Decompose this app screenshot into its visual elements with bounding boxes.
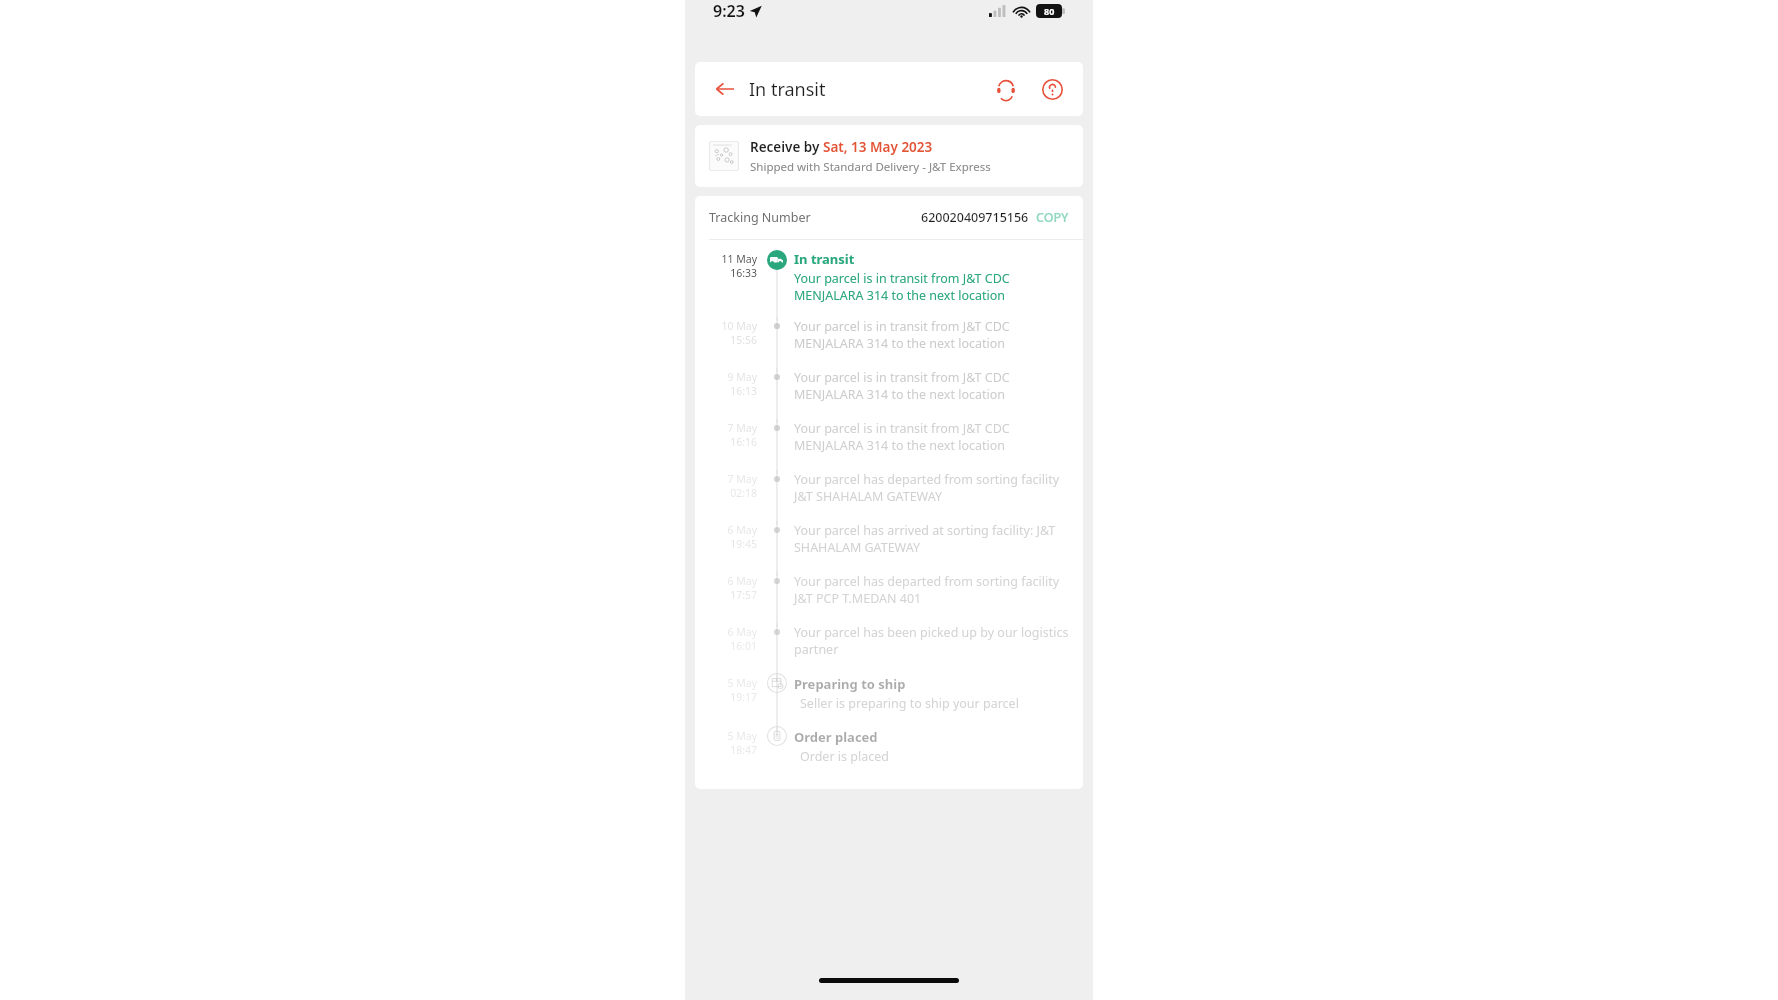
staticText: 7 May xyxy=(727,421,757,435)
staticText: Seller is preparing to ship your parcel xyxy=(800,695,1019,712)
staticText: In transit xyxy=(749,77,826,102)
staticText: Your parcel has departed from sorting fa… xyxy=(794,471,1071,505)
staticText: Order placed xyxy=(794,728,878,746)
staticText: Your parcel is in transit from J&T CDC M… xyxy=(794,420,1071,454)
staticText: Your parcel is in transit from J&T CDC M… xyxy=(794,318,1071,352)
staticText: 620020409715156 xyxy=(921,209,1029,226)
staticText: 11 May xyxy=(721,252,757,266)
staticText: Your parcel has arrived at sorting facil… xyxy=(794,522,1071,556)
button[interactable]: Customer service xyxy=(991,74,1021,104)
staticText: 18:47 xyxy=(730,743,757,757)
staticText: 19:17 xyxy=(730,690,757,704)
button[interactable]: 11 May xyxy=(695,249,1083,317)
button[interactable]: 5 May xyxy=(695,727,1083,773)
staticText: 80 xyxy=(1044,5,1055,17)
button[interactable]: COPY xyxy=(1036,209,1069,226)
button[interactable]: 9 May xyxy=(695,368,1083,419)
staticText: Your parcel has been picked up by our lo… xyxy=(794,624,1071,658)
staticText: Your parcel is in transit from J&T CDC M… xyxy=(794,270,1071,304)
staticText: 5 May xyxy=(727,676,757,690)
staticText: 6 May xyxy=(727,625,757,639)
button[interactable]: 6 May xyxy=(695,572,1083,623)
staticText: Your parcel has departed from sorting fa… xyxy=(794,573,1071,607)
staticText: 9 May xyxy=(727,370,757,384)
button[interactable]: 6 May xyxy=(695,623,1083,674)
staticText: Shipped with Standard Delivery - J&T Exp… xyxy=(750,159,991,175)
staticText: 19:45 xyxy=(730,537,757,551)
staticText: Preparing to ship xyxy=(794,675,906,693)
staticText: 6 May xyxy=(727,574,757,588)
staticText: 5 May xyxy=(727,729,757,743)
staticText: 16:33 xyxy=(730,266,757,280)
button[interactable]: Receive by xyxy=(695,125,1083,187)
staticText: In transit xyxy=(794,250,855,268)
button[interactable]: Back xyxy=(711,75,739,103)
staticText: 6 May xyxy=(727,523,757,537)
button[interactable]: 7 May xyxy=(695,470,1083,521)
staticText: 16:16 xyxy=(730,435,757,449)
staticText: 9:23 xyxy=(713,0,745,22)
staticText: 7 May xyxy=(727,472,757,486)
button[interactable]: 5 May xyxy=(695,674,1083,727)
staticText: 16:13 xyxy=(730,384,757,398)
staticText: Your parcel is in transit from J&T CDC M… xyxy=(794,369,1071,403)
staticText: 17:57 xyxy=(730,588,757,602)
staticText: 16:01 xyxy=(730,639,757,653)
staticText: Order is placed xyxy=(800,748,889,765)
button[interactable]: 6 May xyxy=(695,521,1083,572)
staticText: 15:56 xyxy=(730,333,757,347)
button[interactable]: 7 May xyxy=(695,419,1083,470)
staticText: 10 May xyxy=(721,319,757,333)
staticText: 02:18 xyxy=(730,486,757,500)
staticText: Receive by xyxy=(750,138,823,156)
staticText: COPY xyxy=(1036,209,1069,226)
staticText: Tracking Number xyxy=(709,209,811,226)
button[interactable]: Help xyxy=(1037,74,1067,104)
button[interactable]: 10 May xyxy=(695,317,1083,368)
staticText: Sat, 13 May 2023 xyxy=(823,138,933,156)
